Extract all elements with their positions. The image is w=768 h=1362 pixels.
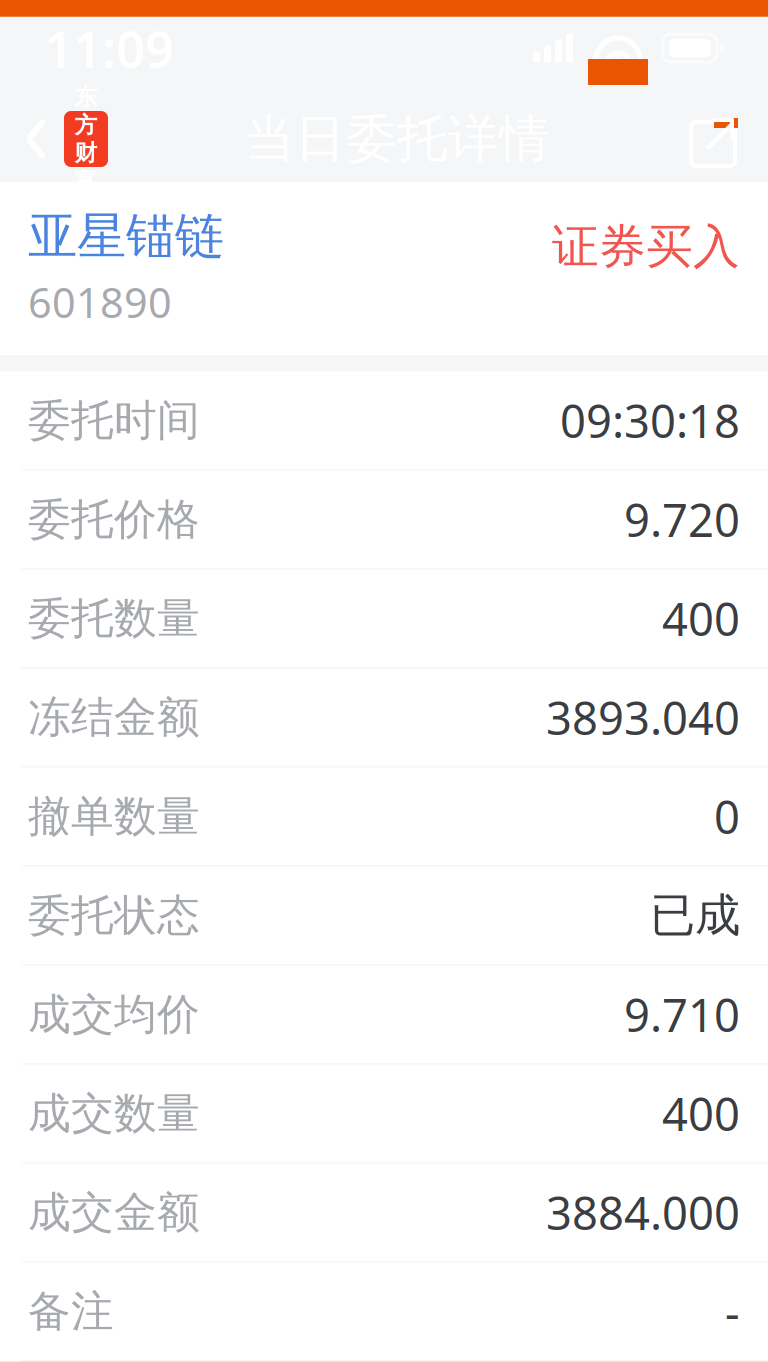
staticText: 3893.040 [546, 687, 740, 748]
staticText: 400 [662, 1083, 740, 1144]
staticText: 成交金额 [28, 1186, 200, 1239]
staticText: 撤单数量 [28, 790, 200, 843]
staticText: 9.720 [624, 489, 740, 550]
staticText: 09:30:18 [560, 390, 740, 451]
staticText: 证券买入 [552, 218, 740, 275]
staticText: 9.710 [624, 984, 740, 1045]
staticText: 当日委托详情 [244, 108, 550, 170]
staticText: 601890 [28, 275, 172, 329]
button[interactable]: Share [674, 96, 768, 182]
staticText: 委托时间 [28, 394, 200, 447]
button[interactable]: Back [0, 96, 120, 182]
staticText: 委托状态 [28, 889, 200, 942]
staticText: 委托价格 [28, 493, 200, 546]
staticText: 11:09 [44, 14, 174, 82]
staticText: 亚星锚链 [28, 206, 224, 267]
staticText: 东方 [74, 83, 97, 139]
staticText: 委托数量 [28, 592, 200, 645]
staticText: 成交均价 [28, 988, 200, 1041]
staticText: 0 [714, 786, 740, 847]
staticText: 400 [662, 588, 740, 649]
staticText: 已成 [650, 888, 740, 943]
staticText: 财富 [74, 139, 97, 195]
staticText: - [725, 1281, 740, 1342]
staticText: 成交数量 [28, 1087, 200, 1140]
staticText: 冻结金额 [28, 691, 200, 744]
staticText: 3884.000 [546, 1182, 740, 1243]
staticText: 备注 [28, 1285, 114, 1338]
